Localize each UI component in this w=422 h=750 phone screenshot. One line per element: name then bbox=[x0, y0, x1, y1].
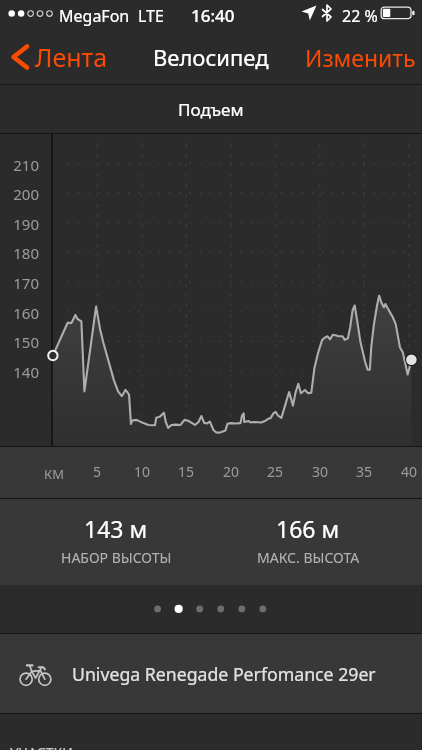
staticText: 22 % bbox=[342, 5, 378, 27]
staticText: НАБОР ВЫСОТЫ bbox=[61, 548, 172, 567]
button[interactable]: Univega Renegade Perfomance 29er bbox=[0, 634, 422, 713]
staticText: 190 bbox=[3, 214, 39, 234]
button[interactable]: Изменить bbox=[295, 34, 422, 81]
button[interactable]: Лента bbox=[0, 34, 116, 80]
staticText: 160 bbox=[3, 303, 39, 323]
staticText: 210 bbox=[3, 155, 39, 175]
staticText: 140 bbox=[3, 362, 39, 382]
staticText: 16:40 bbox=[191, 4, 235, 27]
staticText: 200 bbox=[3, 184, 39, 204]
staticText: УЧАСТКИ bbox=[10, 743, 73, 750]
staticText: 150 bbox=[3, 332, 39, 352]
button[interactable]: 143 м bbox=[20, 499, 212, 585]
staticText: Univega Renegade Perfomance 29er bbox=[72, 662, 376, 686]
staticText: 166 м bbox=[276, 513, 340, 544]
staticText: 170 bbox=[3, 273, 39, 293]
staticText: 143 м bbox=[84, 513, 148, 544]
staticText: 180 bbox=[3, 243, 39, 263]
staticText: 20 bbox=[211, 462, 251, 481]
staticText: 30 bbox=[300, 462, 340, 481]
staticText: 25 bbox=[255, 462, 295, 481]
staticText: MegaFon bbox=[59, 5, 130, 27]
staticText: 15 bbox=[166, 462, 206, 481]
staticText: LTE bbox=[138, 5, 164, 27]
staticText: 5 bbox=[77, 462, 117, 481]
staticText: Подъем bbox=[178, 98, 244, 121]
staticText: МАКС. ВЫСОТА bbox=[257, 548, 360, 567]
staticText: 35 bbox=[344, 462, 384, 481]
button[interactable]: 166 м bbox=[212, 499, 404, 585]
staticText: 40 bbox=[389, 462, 422, 481]
staticText: Велосипед bbox=[153, 42, 269, 72]
staticText: 10 bbox=[122, 462, 162, 481]
staticText: Лента bbox=[35, 40, 108, 74]
staticText: КМ bbox=[44, 465, 64, 483]
